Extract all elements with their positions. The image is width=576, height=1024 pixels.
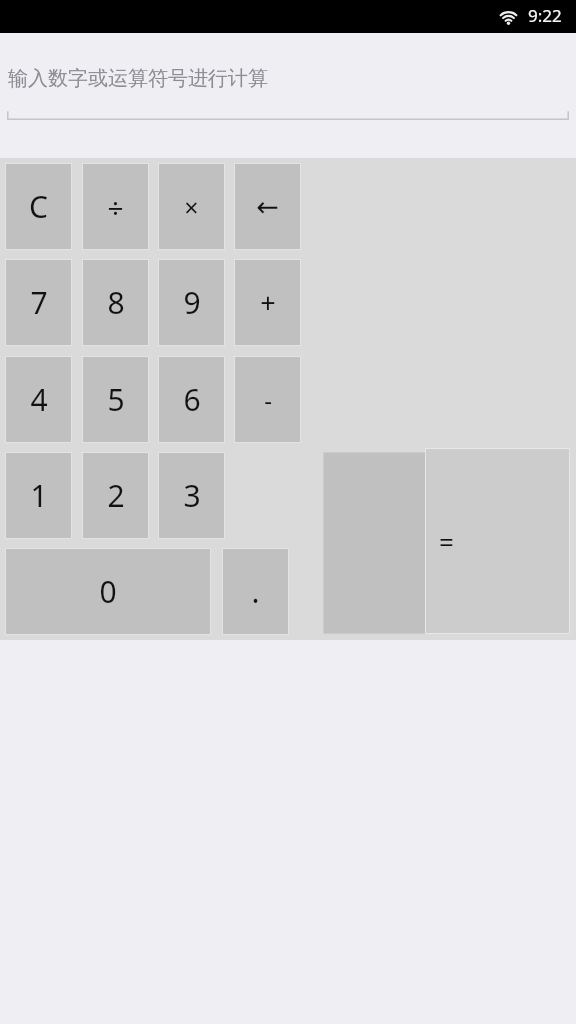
staticText: + [260, 284, 276, 321]
button[interactable]: 8 [82, 259, 149, 346]
staticText: 3 [183, 475, 201, 516]
button[interactable]: 6 [158, 356, 225, 443]
other: Wi-Fi [496, 8, 521, 27]
button[interactable]: × [158, 163, 225, 250]
button[interactable]: 输入数字或运算符号进行计算 [0, 33, 576, 158]
button[interactable]: 3 [158, 452, 225, 539]
button[interactable]: . [222, 548, 289, 635]
button[interactable]: = [323, 448, 570, 634]
staticText: C [29, 186, 48, 227]
button[interactable]: 5 [82, 356, 149, 443]
staticText: 9 [183, 282, 201, 323]
button[interactable]: 1 [5, 452, 72, 539]
button[interactable]: - [234, 356, 301, 443]
button[interactable]: C [5, 163, 72, 250]
staticText: 输入数字或运算符号进行计算 [8, 66, 268, 91]
staticText: 5 [107, 379, 125, 420]
staticText: ← [256, 191, 279, 222]
staticText: 1 [30, 475, 48, 516]
staticText: . [251, 571, 260, 612]
staticText: 2 [107, 475, 125, 516]
button[interactable]: 2 [82, 452, 149, 539]
staticText: - [264, 383, 272, 416]
staticText: 9:22 [528, 4, 562, 27]
button[interactable]: Backspace [234, 163, 301, 250]
button[interactable]: + [234, 259, 301, 346]
staticText: 0 [99, 571, 117, 612]
staticText: 6 [183, 379, 201, 420]
staticText: 8 [107, 282, 125, 323]
button[interactable]: 4 [5, 356, 72, 443]
button[interactable]: ÷ [82, 163, 149, 250]
button[interactable]: 0 [5, 548, 211, 635]
staticText: = [439, 524, 454, 559]
staticText: × [184, 190, 199, 224]
staticText: 4 [30, 379, 48, 420]
staticText: 7 [30, 282, 48, 323]
staticText: ÷ [107, 188, 124, 226]
button[interactable]: 7 [5, 259, 72, 346]
button[interactable]: 9 [158, 259, 225, 346]
